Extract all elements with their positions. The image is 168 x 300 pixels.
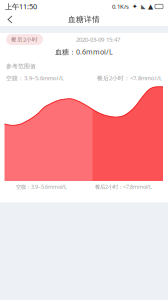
staticText: ▲ bbox=[148, 3, 153, 10]
staticText: ◣ bbox=[141, 3, 146, 10]
staticText: ✦ bbox=[132, 3, 138, 10]
staticText: 血糖：0.6mmol/L bbox=[55, 47, 113, 57]
staticText: 餐后2小时：<7.8mmol/L bbox=[97, 74, 162, 82]
staticText: 血糖详情 bbox=[68, 15, 100, 24]
staticText: 上午11:50 bbox=[5, 1, 37, 11]
staticText: 参考范围值 bbox=[6, 63, 36, 70]
staticText: 0.1K/s bbox=[112, 2, 129, 11]
staticText: 餐后2小时 bbox=[11, 36, 38, 43]
staticText: 2020-03-09 15:47 bbox=[76, 35, 120, 44]
staticText: 餐后2小时：<7.8mmol/L bbox=[95, 183, 152, 190]
staticText: 空腹：3.9~5.6mmol/L bbox=[6, 74, 64, 82]
button[interactable]: 返回 bbox=[2, 13, 18, 26]
staticText: 空腹：3.9~5.6mmol/L bbox=[16, 183, 67, 190]
